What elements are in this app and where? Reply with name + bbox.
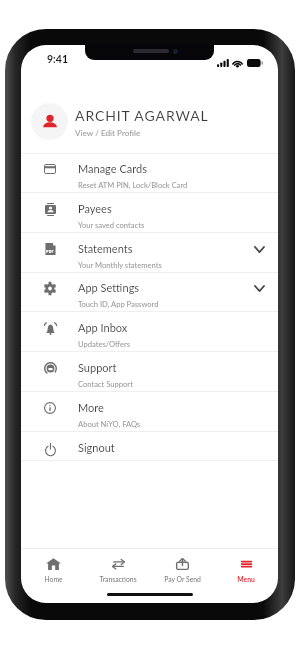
other: Cards — [44, 164, 56, 174]
staticText: Pay Or Send — [164, 575, 201, 583]
button[interactable]: Transactions — [86, 549, 150, 583]
button[interactable]: Payees — [21, 193, 278, 233]
button[interactable]: Statements — [21, 233, 278, 273]
staticText: View / Edit Profile — [75, 128, 141, 138]
staticText: Manage Cards — [78, 162, 147, 175]
other: Settings — [44, 282, 56, 295]
other: Signout — [45, 443, 56, 456]
other: More — [44, 402, 56, 414]
staticText: Statements — [78, 242, 133, 255]
other: Statements — [45, 243, 56, 255]
other: Expand App Settings — [254, 285, 265, 292]
staticText: Support — [78, 361, 117, 374]
staticText: 9:41 — [47, 53, 68, 66]
staticText: Your saved contacts — [78, 220, 145, 229]
other: Payees — [45, 203, 56, 216]
staticText: Signout — [78, 441, 115, 454]
other: Support — [44, 362, 57, 375]
button[interactable]: Menu — [214, 549, 278, 583]
button[interactable]: Signout — [21, 431, 278, 461]
staticText: ARCHIT AGARWAL — [75, 107, 209, 124]
button[interactable]: Home — [21, 549, 86, 583]
button[interactable]: Pay Or Send — [150, 549, 214, 583]
other: Inbox — [44, 322, 57, 335]
staticText: Updates/Offers — [78, 339, 131, 348]
staticText: App Inbox — [78, 321, 128, 334]
button[interactable]: More — [21, 392, 278, 432]
button[interactable]: ARCHIT AGARWAL — [21, 68, 278, 153]
button[interactable]: Support — [21, 352, 278, 392]
staticText: Your Monthly statements — [78, 260, 162, 269]
staticText: Transactions — [99, 575, 137, 583]
button[interactable]: Settings — [21, 272, 278, 312]
other: Expand Statements — [254, 246, 265, 253]
staticText: Contact Support — [78, 379, 133, 388]
staticText: Payees — [78, 202, 112, 215]
staticText: Menu — [237, 575, 255, 583]
staticText: More — [78, 401, 104, 414]
staticText: Touch ID, App Password — [78, 299, 159, 308]
staticText: Home — [44, 575, 63, 583]
button[interactable]: Cards — [21, 153, 278, 193]
staticText: Reset ATM PIN, Lock/Block Card — [78, 180, 188, 189]
button[interactable]: Inbox — [21, 312, 278, 352]
staticText: App Settings — [78, 281, 140, 294]
staticText: About NiYO, FAQs — [78, 419, 141, 428]
